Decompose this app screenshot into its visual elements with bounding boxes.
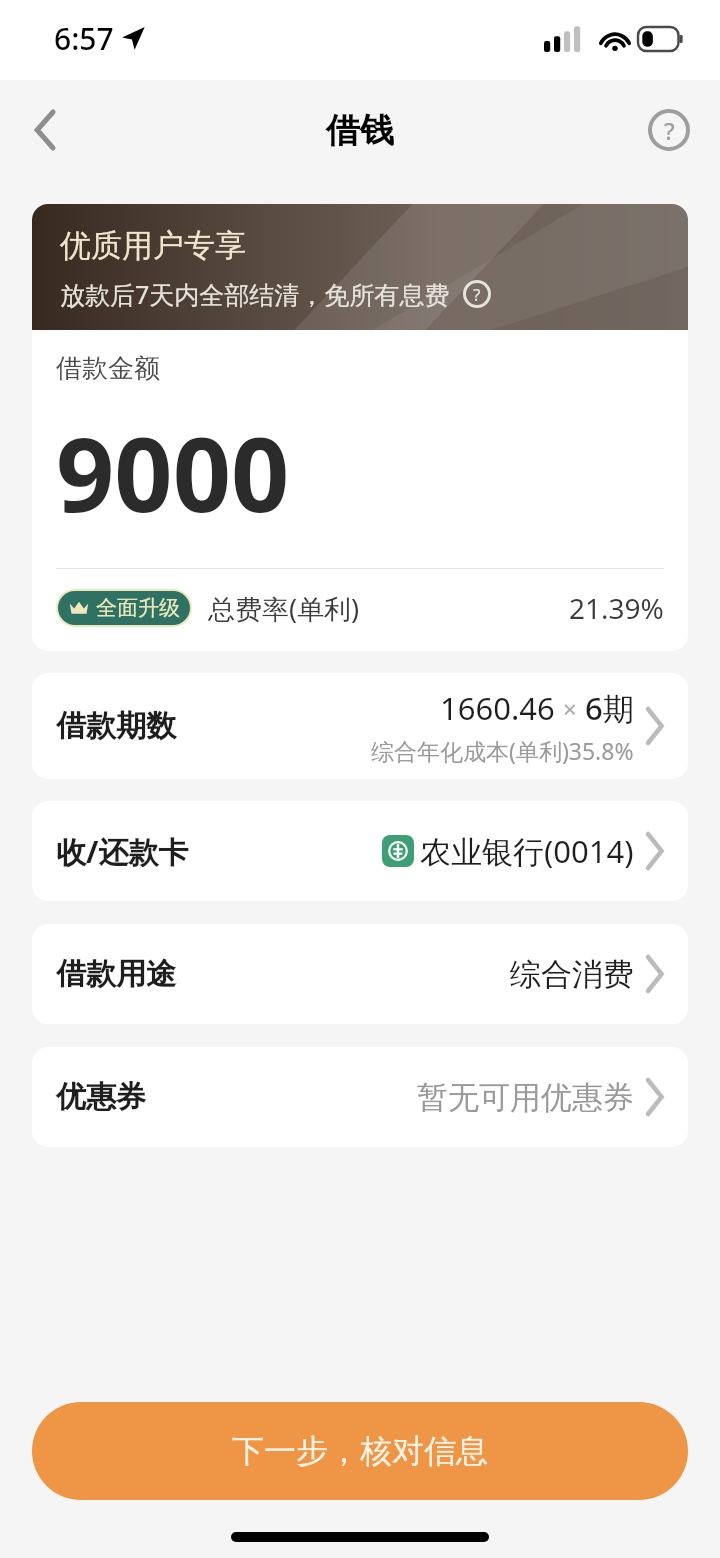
staticText: 21.39% [569,589,664,627]
button[interactable]: 优惠券 [32,1047,688,1147]
staticText: 优质用户专享 [60,226,246,265]
staticText: 下一步，核对信息 [232,1431,488,1471]
staticText: 6:57 [54,18,114,59]
staticText: 农业银行(0014) [420,830,634,872]
staticText: 9000 [56,403,290,542]
staticText: ? [473,283,481,306]
staticText: 总费率(单利) [208,590,360,627]
button[interactable]: 借款用途 [32,924,688,1024]
button[interactable]: 借款期数 [32,673,688,779]
button[interactable]: 下一步，核对信息 [32,1402,688,1500]
button[interactable]: Info [462,279,492,309]
staticText: 借款用途 [56,955,176,993]
staticText: 收/还款卡 [56,831,189,872]
staticText: 1660.46 [440,687,555,729]
staticText: ? [664,114,675,147]
staticText: 借款金额 [56,352,160,385]
button[interactable]: Back [18,102,74,158]
staticText: 借款期数 [56,707,176,745]
staticText: 6期 [585,687,634,729]
staticText: 综合消费 [510,955,634,994]
button[interactable]: 收/还款卡 [32,801,688,901]
staticText: 综合年化成本(单利)35.8% [371,735,634,766]
button[interactable]: Help [642,103,696,157]
staticText: 暂无可用优惠券 [417,1078,634,1117]
staticText: 放款后7天内全部结清，免所有息费 [60,277,450,311]
staticText: × [563,692,577,725]
staticText: 全面升级 [96,595,180,621]
staticText: 借钱 [326,109,394,152]
staticText: 优惠券 [56,1078,146,1116]
